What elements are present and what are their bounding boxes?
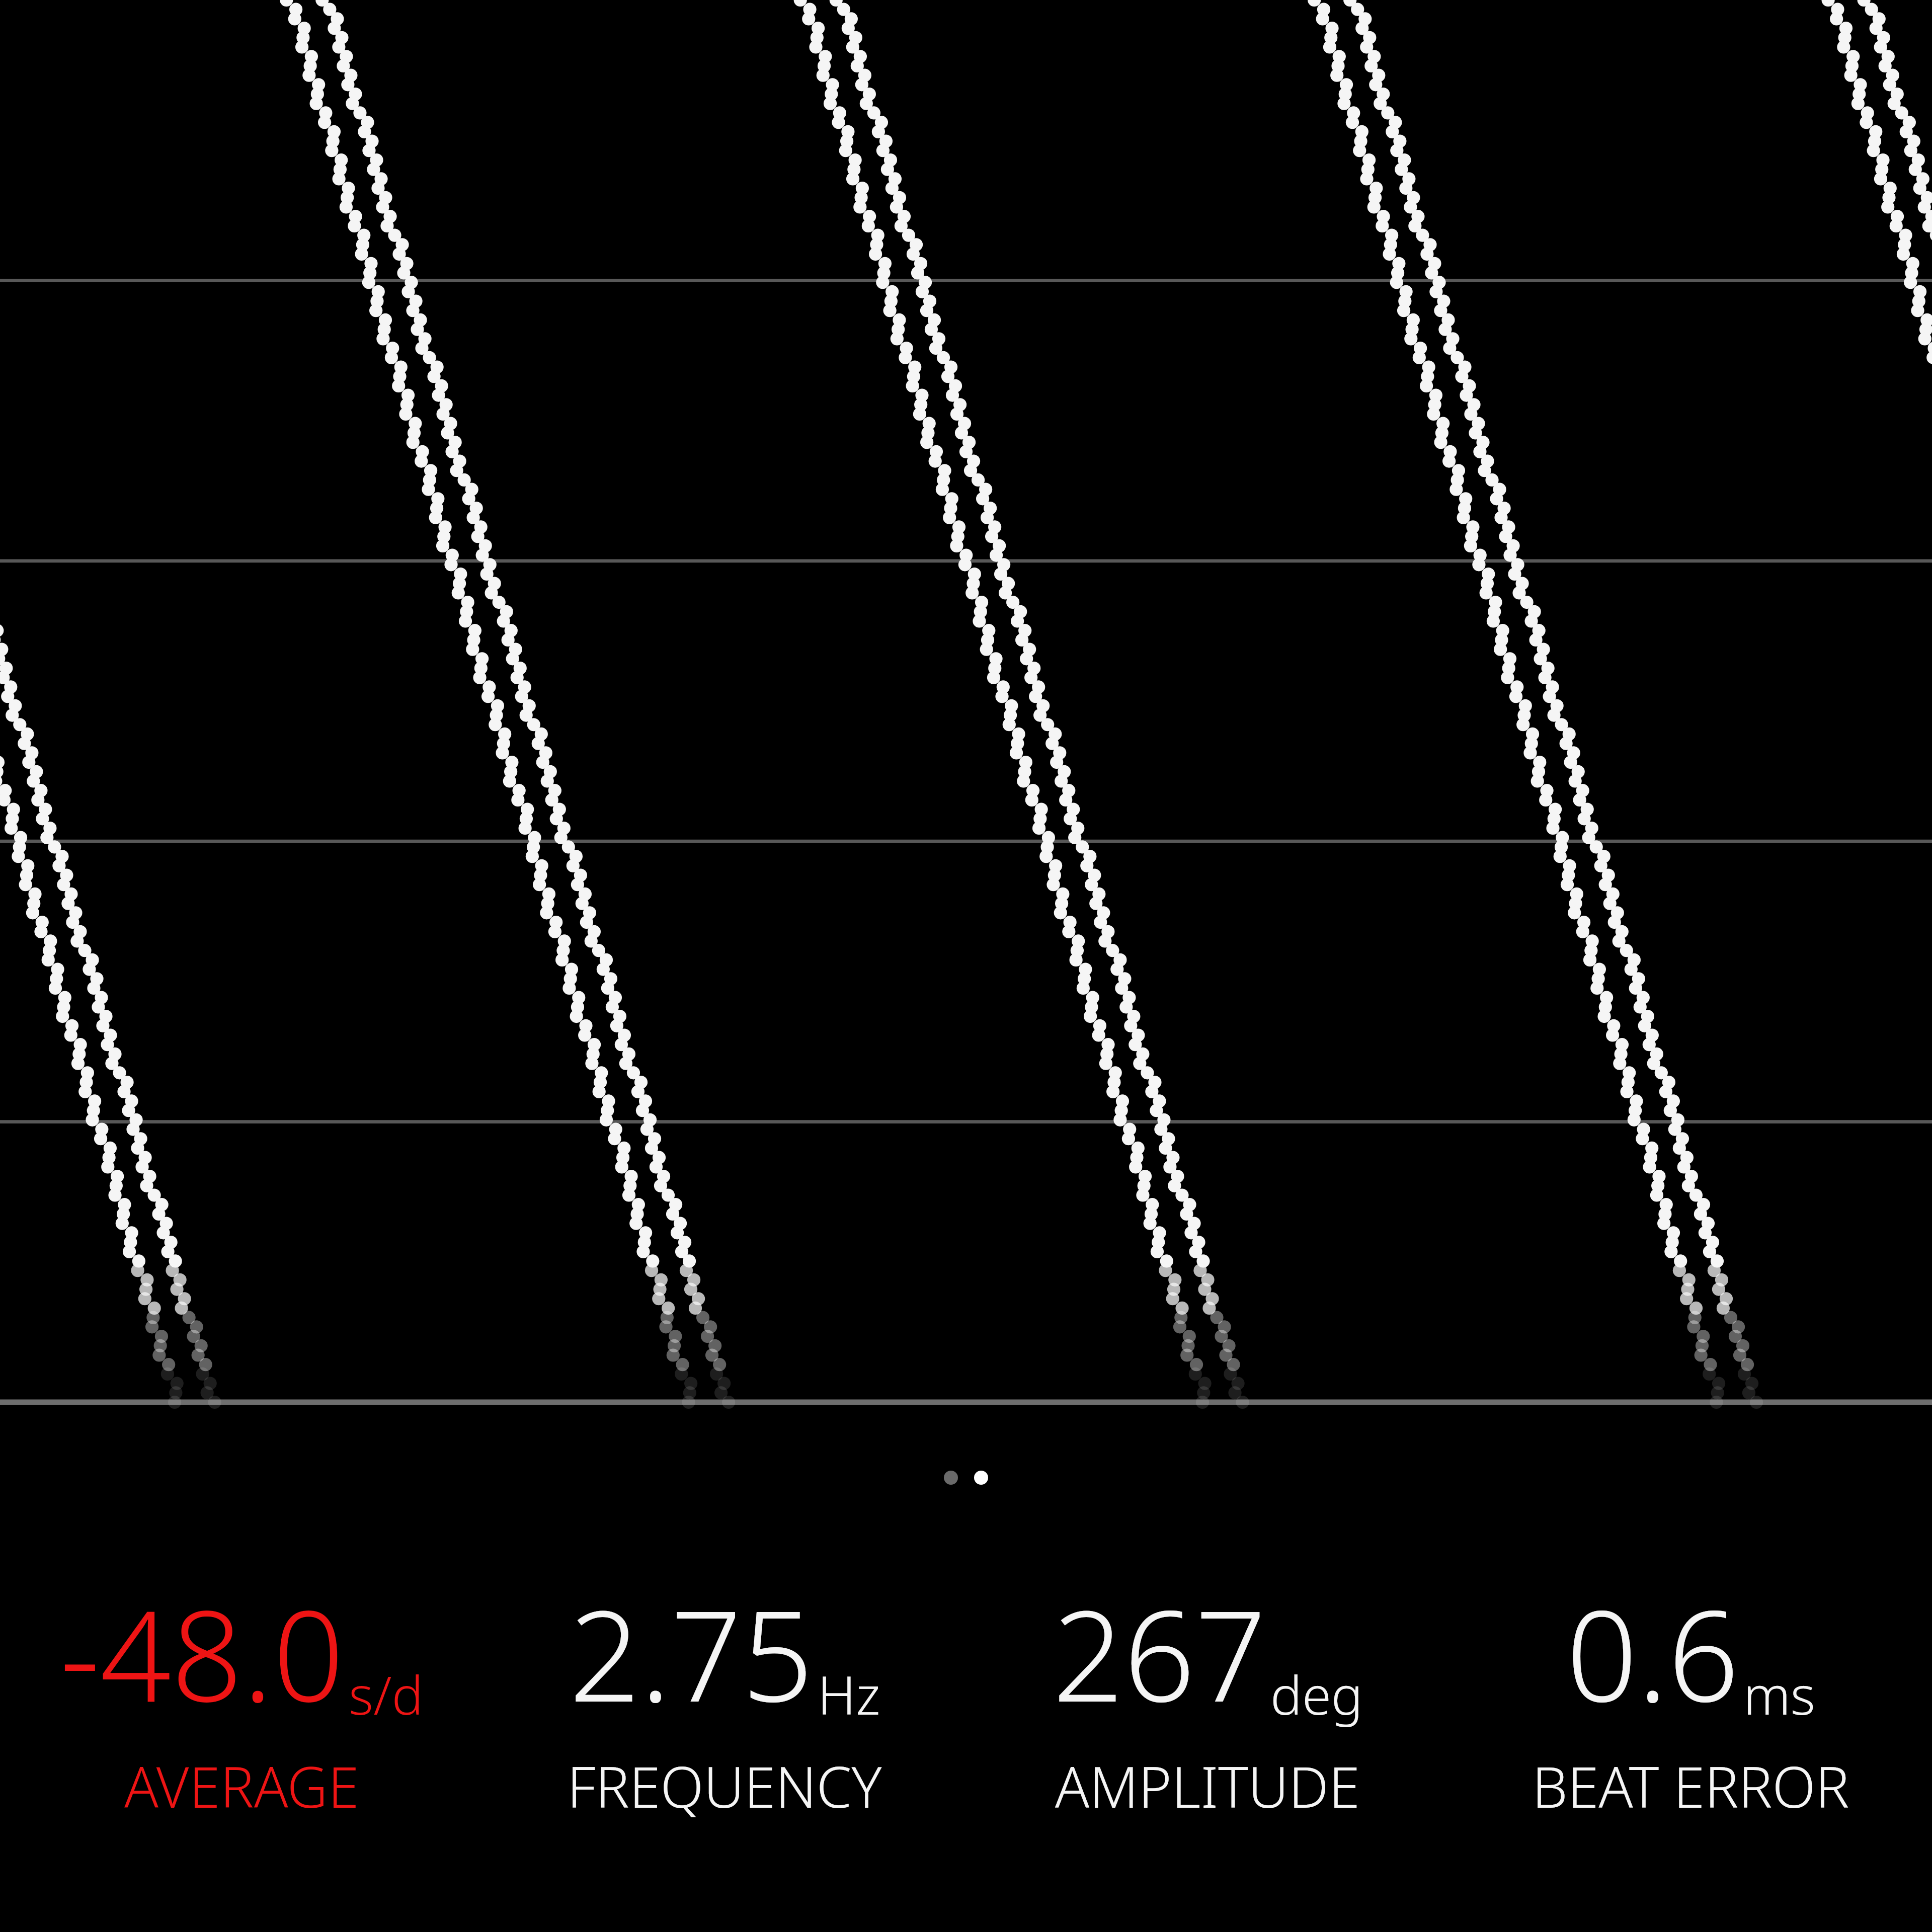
staticText: ms (1743, 1658, 1815, 1730)
staticText: 0.6 (1566, 1568, 1739, 1738)
staticText: FREQUENCY (567, 1747, 882, 1824)
button[interactable]: Rate trace graph (0, 0, 1932, 1402)
staticText: -48.0 (60, 1568, 345, 1738)
button[interactable]: Page 2 (974, 1471, 988, 1485)
staticText: BEAT ERROR (1532, 1747, 1849, 1824)
button[interactable]: 267 (966, 1553, 1449, 1932)
button[interactable]: Page 1 (944, 1471, 958, 1485)
button[interactable]: 2.75 (483, 1553, 966, 1932)
staticText: Hz (818, 1658, 880, 1730)
staticText: deg (1270, 1658, 1363, 1730)
button[interactable]: 0.6 (1449, 1553, 1932, 1932)
staticText: AMPLITUDE (1055, 1747, 1360, 1824)
button[interactable]: -48.0 (0, 1553, 483, 1932)
staticText: 267 (1053, 1568, 1266, 1738)
staticText: s/d (349, 1658, 424, 1730)
staticText: AVERAGE (124, 1747, 359, 1824)
staticText: 2.75 (569, 1568, 814, 1738)
